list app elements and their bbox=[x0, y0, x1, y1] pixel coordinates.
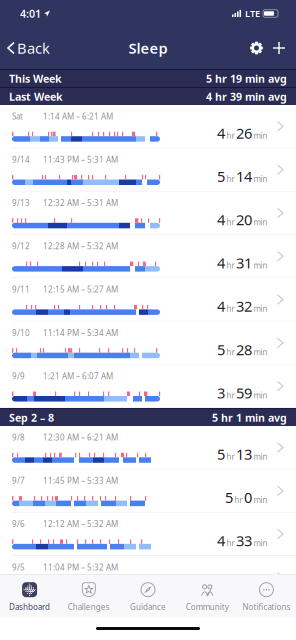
staticText: 5 hr 19 min avg bbox=[206, 71, 287, 86]
button[interactable]: Notifications bbox=[237, 576, 296, 616]
staticText: hr bbox=[226, 173, 234, 184]
staticText: 9/5 bbox=[12, 562, 25, 573]
button[interactable]: 9/14 bbox=[0, 148, 296, 192]
staticText: 12:30 AM – 6:21 AM bbox=[43, 432, 118, 443]
button[interactable]: 9/7 bbox=[0, 469, 296, 513]
staticText: 4 bbox=[217, 531, 225, 550]
button[interactable]: Back bbox=[0, 32, 50, 64]
staticText: 9/8 bbox=[12, 432, 25, 443]
staticText: min bbox=[253, 303, 267, 314]
staticText: 11:14 PM – 5:34 AM bbox=[43, 327, 118, 338]
staticText: 31 bbox=[236, 253, 252, 273]
button[interactable]: Guidance bbox=[118, 576, 178, 616]
staticText: hr bbox=[226, 451, 234, 462]
button[interactable]: Add bbox=[271, 34, 296, 62]
staticText: 11:43 PM – 5:31 AM bbox=[43, 154, 118, 165]
staticText: min bbox=[253, 173, 267, 184]
staticText: hr bbox=[226, 217, 234, 227]
button[interactable]: 9/11 bbox=[0, 278, 296, 321]
staticText: min bbox=[253, 260, 267, 271]
staticText: min bbox=[253, 347, 267, 357]
staticText: hr bbox=[226, 390, 234, 401]
staticText: 13 bbox=[236, 444, 252, 464]
button[interactable]: 9/12 bbox=[0, 235, 296, 278]
staticText: min bbox=[253, 451, 267, 462]
staticText: 11:04 PM – 5:32 AM bbox=[43, 562, 118, 573]
staticText: hr bbox=[226, 538, 234, 548]
staticText: 4 hr 39 min avg bbox=[206, 89, 287, 104]
button[interactable]: 9/13 bbox=[0, 192, 296, 235]
staticText: min bbox=[253, 390, 267, 401]
staticText: 5 bbox=[217, 166, 225, 186]
staticText: Sat bbox=[12, 111, 23, 122]
staticText: 20 bbox=[236, 210, 252, 229]
staticText: min bbox=[253, 538, 267, 548]
staticText: 4 bbox=[217, 210, 225, 229]
staticText: 4 bbox=[217, 296, 225, 316]
staticText: Sep 2 – 8 bbox=[9, 410, 54, 425]
staticText: Back bbox=[17, 38, 50, 58]
staticText: 32 bbox=[236, 296, 252, 316]
staticText: 12:32 AM – 5:31 AM bbox=[43, 198, 118, 208]
staticText: Challenges bbox=[68, 602, 110, 612]
button[interactable]: 9/8 bbox=[0, 426, 296, 469]
staticText: LTE bbox=[245, 7, 260, 20]
staticText: 11:45 PM – 5:33 AM bbox=[43, 475, 118, 486]
button[interactable]: Sat bbox=[0, 105, 296, 148]
staticText: hr bbox=[226, 347, 234, 357]
button[interactable]: Community bbox=[178, 576, 237, 616]
staticText: hr bbox=[234, 495, 242, 505]
button[interactable]: 9/10 bbox=[0, 321, 296, 365]
staticText: min bbox=[253, 581, 267, 592]
staticText: 5 bbox=[217, 340, 225, 359]
staticText: min bbox=[253, 495, 267, 505]
staticText: hr bbox=[226, 130, 234, 141]
staticText: 9/10 bbox=[12, 327, 30, 338]
staticText: 59 bbox=[236, 383, 252, 402]
staticText: 5 bbox=[225, 488, 233, 507]
staticText: min bbox=[253, 217, 267, 227]
staticText: Last Week bbox=[9, 89, 63, 104]
staticText: 33 bbox=[236, 531, 252, 550]
staticText: 4 bbox=[217, 253, 225, 273]
staticText: 9/13 bbox=[12, 198, 30, 208]
staticText: 12:15 AM – 5:27 AM bbox=[43, 284, 118, 295]
button[interactable]: 9/5 bbox=[0, 556, 296, 599]
staticText: 5 bbox=[217, 444, 225, 464]
staticText: Dashboard bbox=[9, 602, 50, 612]
staticText: 1:21 AM – 6:07 AM bbox=[43, 371, 113, 381]
staticText: 3 bbox=[217, 383, 225, 402]
staticText: 9/12 bbox=[12, 241, 30, 251]
staticText: Sleep bbox=[128, 38, 167, 58]
button[interactable]: Dashboard bbox=[0, 576, 59, 616]
staticText: 12:12 AM – 5:32 AM bbox=[43, 519, 118, 529]
staticText: 28 bbox=[236, 340, 252, 359]
staticText: This Week bbox=[9, 71, 62, 86]
staticText: 9/6 bbox=[12, 519, 25, 529]
staticText: 9/14 bbox=[12, 154, 30, 165]
staticText: 9/11 bbox=[12, 284, 30, 295]
button[interactable]: Challenges bbox=[59, 576, 118, 616]
button[interactable]: 9/9 bbox=[0, 365, 296, 408]
staticText: 1:14 AM – 6:21 AM bbox=[43, 111, 113, 122]
staticText: hr bbox=[226, 303, 234, 314]
staticText: 0 bbox=[244, 488, 252, 507]
staticText: Community bbox=[186, 602, 229, 612]
button[interactable]: Settings bbox=[242, 33, 271, 62]
staticText: 5 hr 1 min avg bbox=[212, 410, 287, 425]
staticText: 9/7 bbox=[12, 475, 25, 486]
staticText: 14 bbox=[236, 166, 252, 186]
staticText: Notifications bbox=[242, 602, 290, 612]
button[interactable]: 9/6 bbox=[0, 513, 296, 556]
staticText: 12:28 AM – 5:32 AM bbox=[43, 241, 118, 251]
staticText: min bbox=[253, 130, 267, 141]
staticText: Guidance bbox=[130, 602, 166, 612]
staticText: 9/9 bbox=[12, 371, 25, 381]
staticText: 26 bbox=[236, 123, 252, 143]
staticText: 4:01 bbox=[20, 6, 41, 21]
staticText: 4 bbox=[217, 123, 225, 143]
staticText: hr bbox=[226, 260, 234, 271]
